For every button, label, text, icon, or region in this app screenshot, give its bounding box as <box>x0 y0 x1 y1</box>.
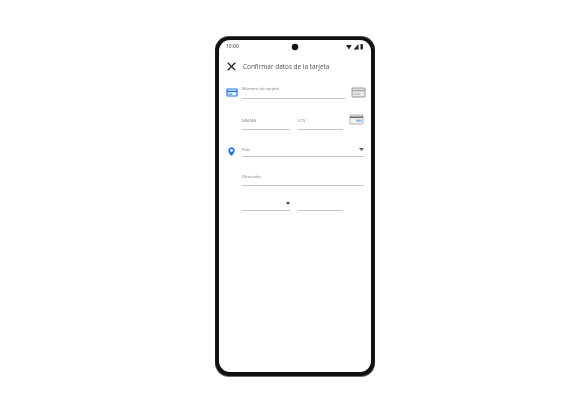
staticText: Número de tarjeta <box>242 85 280 91</box>
button[interactable]: País <box>242 146 364 157</box>
staticText: Confirmar datos de la tarjeta <box>243 62 330 71</box>
staticText: Dirección <box>242 173 261 179</box>
button[interactable]: Ayuda CCV <box>349 114 363 124</box>
button[interactable]: Escanear tarjeta <box>351 87 365 98</box>
button[interactable]: MM/AA <box>242 118 290 130</box>
button[interactable]: Número de tarjeta <box>242 85 345 99</box>
staticText: CCV <box>298 118 306 124</box>
staticText: País <box>242 146 251 152</box>
staticText: 10:00 <box>226 43 239 50</box>
button[interactable]: CCV <box>298 118 343 130</box>
button[interactable]: Dirección <box>242 173 364 186</box>
button[interactable]: Cerrar <box>224 59 238 73</box>
staticText: MM/AA <box>242 118 257 124</box>
